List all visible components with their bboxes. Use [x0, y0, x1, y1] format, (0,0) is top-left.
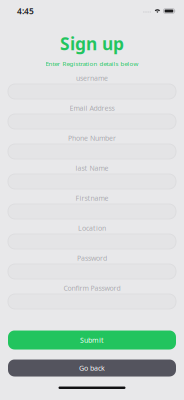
staticText: Confirm Password	[63, 283, 120, 293]
button[interactable]: Email Address	[8, 103, 176, 133]
staticText: Enter Registration details below	[45, 59, 138, 68]
button[interactable]: Submit	[8, 330, 176, 349]
staticText: Phone Number	[68, 133, 116, 143]
button[interactable]: Password	[8, 253, 176, 283]
button[interactable]: Location	[8, 223, 176, 253]
staticText: Go back	[79, 363, 105, 373]
button[interactable]: Confirm Password	[8, 283, 176, 313]
staticText: Firstname	[75, 193, 108, 203]
button[interactable]: Go back	[8, 359, 176, 376]
button[interactable]: username	[8, 73, 176, 103]
staticText: 4:45	[17, 5, 34, 17]
staticText: username	[76, 73, 108, 83]
button[interactable]: last Name	[8, 163, 176, 193]
button[interactable]: Firstname	[8, 193, 176, 223]
staticText: Password	[77, 253, 107, 263]
staticText: Submit	[80, 335, 104, 345]
staticText: Location	[78, 223, 106, 233]
button[interactable]: Phone Number	[8, 133, 176, 163]
staticText: Email Address	[69, 103, 114, 113]
staticText: Sign up	[60, 32, 124, 55]
staticText: last Name	[75, 163, 108, 173]
